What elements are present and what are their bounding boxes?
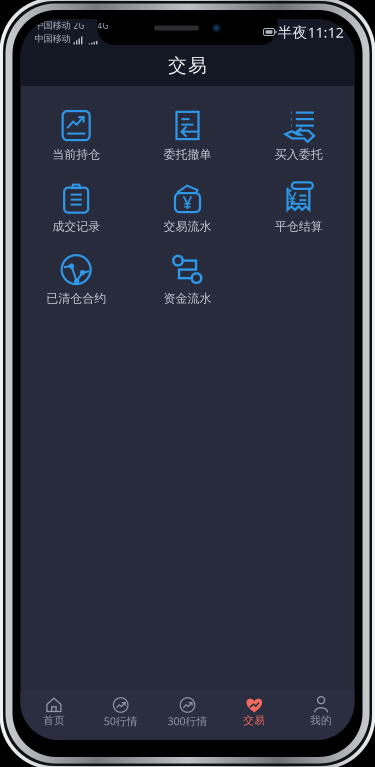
button[interactable]: ¥ <box>243 172 354 244</box>
staticText: ¥ <box>288 187 297 208</box>
staticText: 50行情 <box>104 714 138 728</box>
button[interactable]: 首页 <box>20 691 87 740</box>
staticText: 中国移动 <box>34 19 70 31</box>
staticText: 买入委托 <box>275 147 323 162</box>
staticText: 当前持仓 <box>52 147 100 162</box>
staticText: 已清仓合约 <box>46 291 106 306</box>
button[interactable]: 成交记录 <box>20 172 132 244</box>
staticText: 资金流水 <box>163 291 211 306</box>
button[interactable]: 交易 <box>221 691 288 740</box>
button[interactable]: 已清仓合约 <box>20 244 132 316</box>
button[interactable]: 当前持仓 <box>20 100 132 172</box>
button[interactable]: 我的 <box>288 691 354 740</box>
staticText: ¥ <box>182 191 192 214</box>
staticText: 首页 <box>43 714 65 727</box>
staticText: 4G <box>97 20 108 31</box>
staticText: 平仓结算 <box>275 219 323 234</box>
button[interactable]: ¥ <box>132 172 243 244</box>
staticText: 交易流水 <box>163 219 211 234</box>
staticText: 300行情 <box>167 714 207 728</box>
staticText: 交易 <box>243 714 265 727</box>
button[interactable]: 50行情 <box>87 691 154 740</box>
button[interactable]: 委托撤单 <box>132 100 243 172</box>
staticText: 我的 <box>310 714 332 727</box>
button[interactable]: 300行情 <box>154 691 221 740</box>
button[interactable]: 买入委托 <box>243 100 354 172</box>
staticText: 交 易 <box>168 54 207 77</box>
staticText: 成交记录 <box>52 219 100 234</box>
button[interactable]: 资金流水 <box>132 244 243 316</box>
staticText: 中国移动 <box>34 33 70 44</box>
staticText: 委托撤单 <box>163 147 211 162</box>
staticText: 半夜11:12 <box>277 22 343 42</box>
staticText: 2G <box>73 20 84 31</box>
